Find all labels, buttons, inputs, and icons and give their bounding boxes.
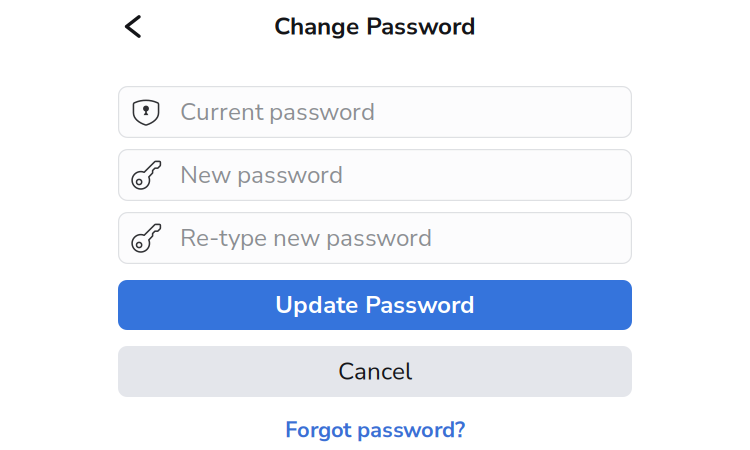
button[interactable]: Forgot password? <box>0 413 750 447</box>
button[interactable]: Cancel <box>118 346 632 397</box>
staticText: Re-type new password <box>180 221 432 255</box>
button[interactable]: Update Password <box>118 280 632 330</box>
staticText: Update Password <box>275 288 475 322</box>
button[interactable]: Back <box>114 4 152 48</box>
button[interactable]: Re-type new password <box>118 212 632 264</box>
staticText: Current password <box>180 95 375 129</box>
staticText: Forgot password? <box>285 415 465 445</box>
button[interactable]: New password <box>118 149 632 201</box>
staticText: New password <box>180 158 343 192</box>
button[interactable]: Current password <box>118 86 632 138</box>
staticText: Change Password <box>274 10 476 43</box>
staticText: Cancel <box>338 355 412 388</box>
